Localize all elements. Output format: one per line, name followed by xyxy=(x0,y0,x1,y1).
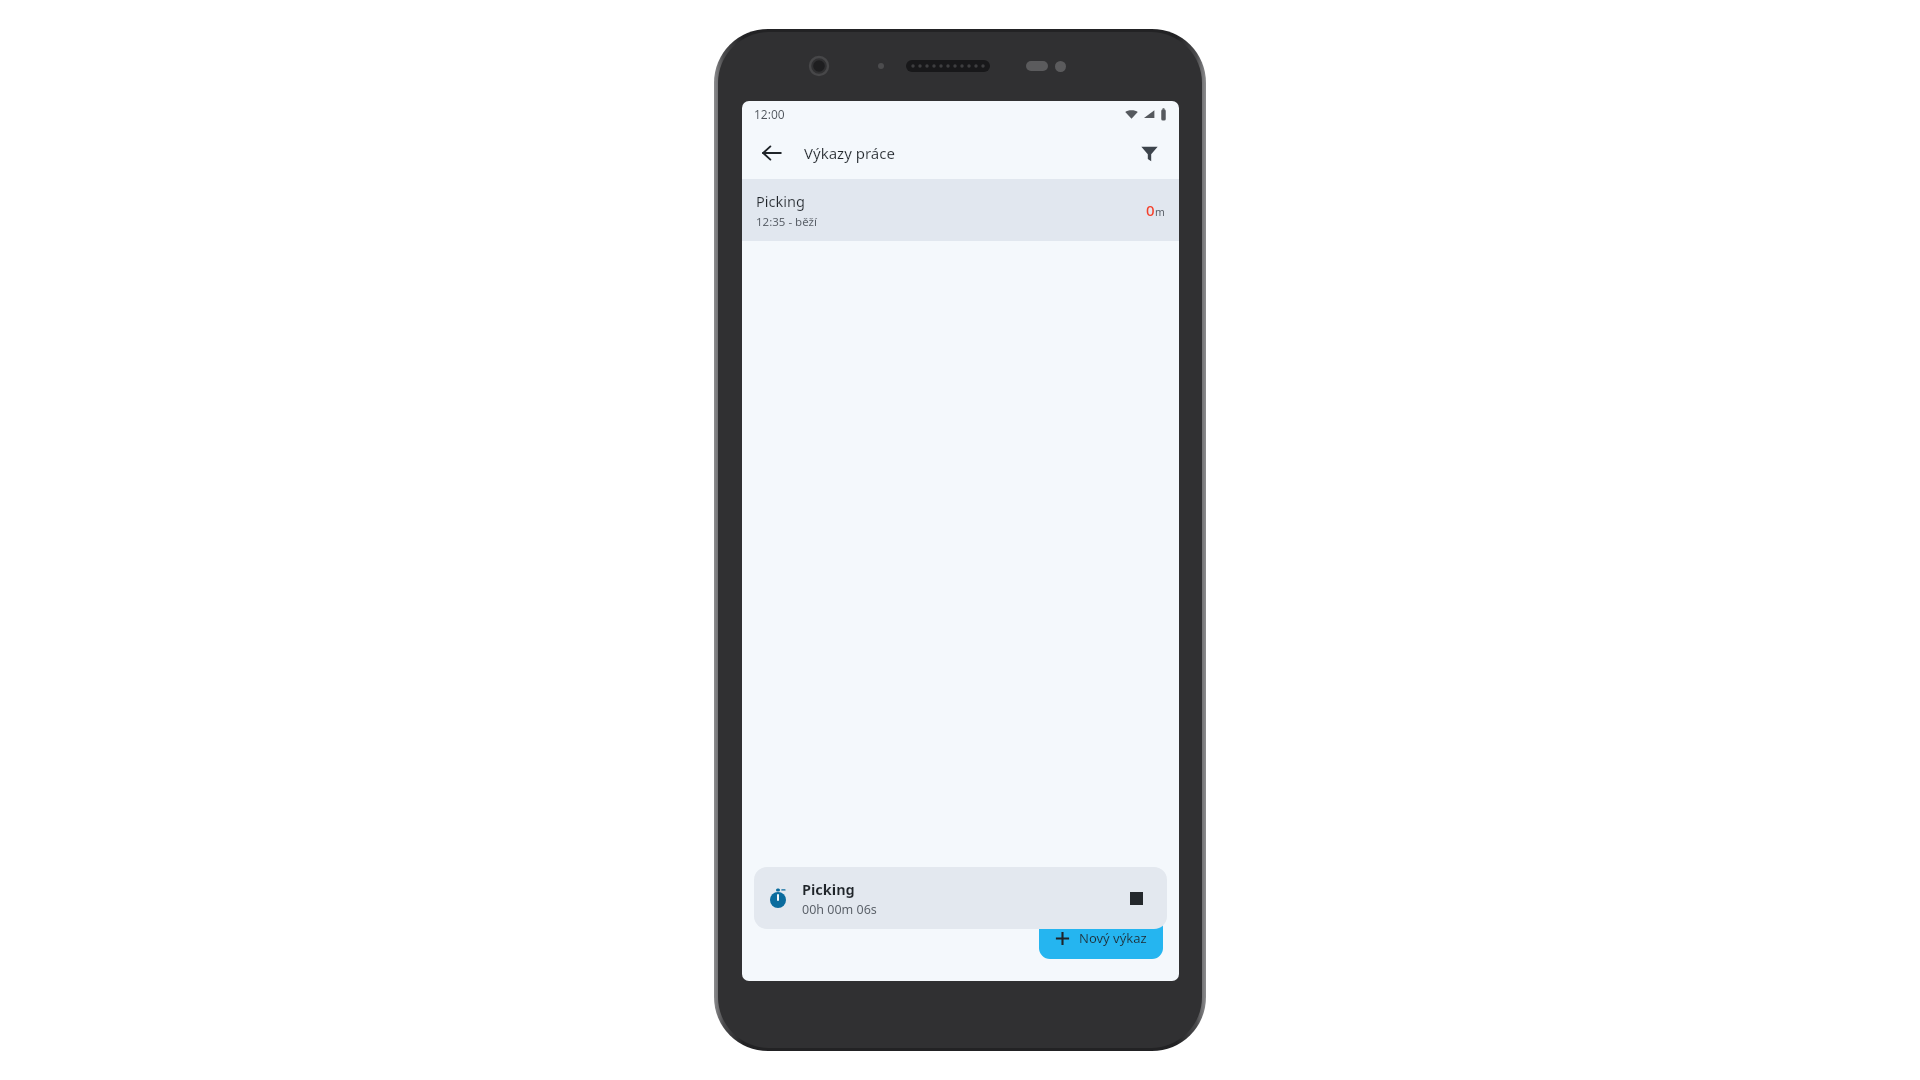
staticText: Výkazy práce xyxy=(804,143,895,163)
button[interactable]: Nový výkaz xyxy=(1039,917,1163,959)
staticText: m xyxy=(1155,205,1165,219)
staticText: 00h 00m 06s xyxy=(802,901,877,918)
button[interactable]: Filter xyxy=(1129,133,1169,173)
staticText: 12:35 - běží xyxy=(756,214,817,230)
staticText: Picking xyxy=(802,879,855,899)
staticText: 12:00 xyxy=(754,106,785,122)
button[interactable]: Stop xyxy=(1119,881,1153,915)
staticText: Picking xyxy=(756,191,805,211)
button[interactable]: Picking xyxy=(754,867,1167,929)
staticText: Nový výkaz xyxy=(1079,929,1147,947)
staticText: 0 xyxy=(1146,200,1155,220)
button[interactable]: Picking xyxy=(742,179,1179,241)
button[interactable]: Back xyxy=(752,133,792,173)
